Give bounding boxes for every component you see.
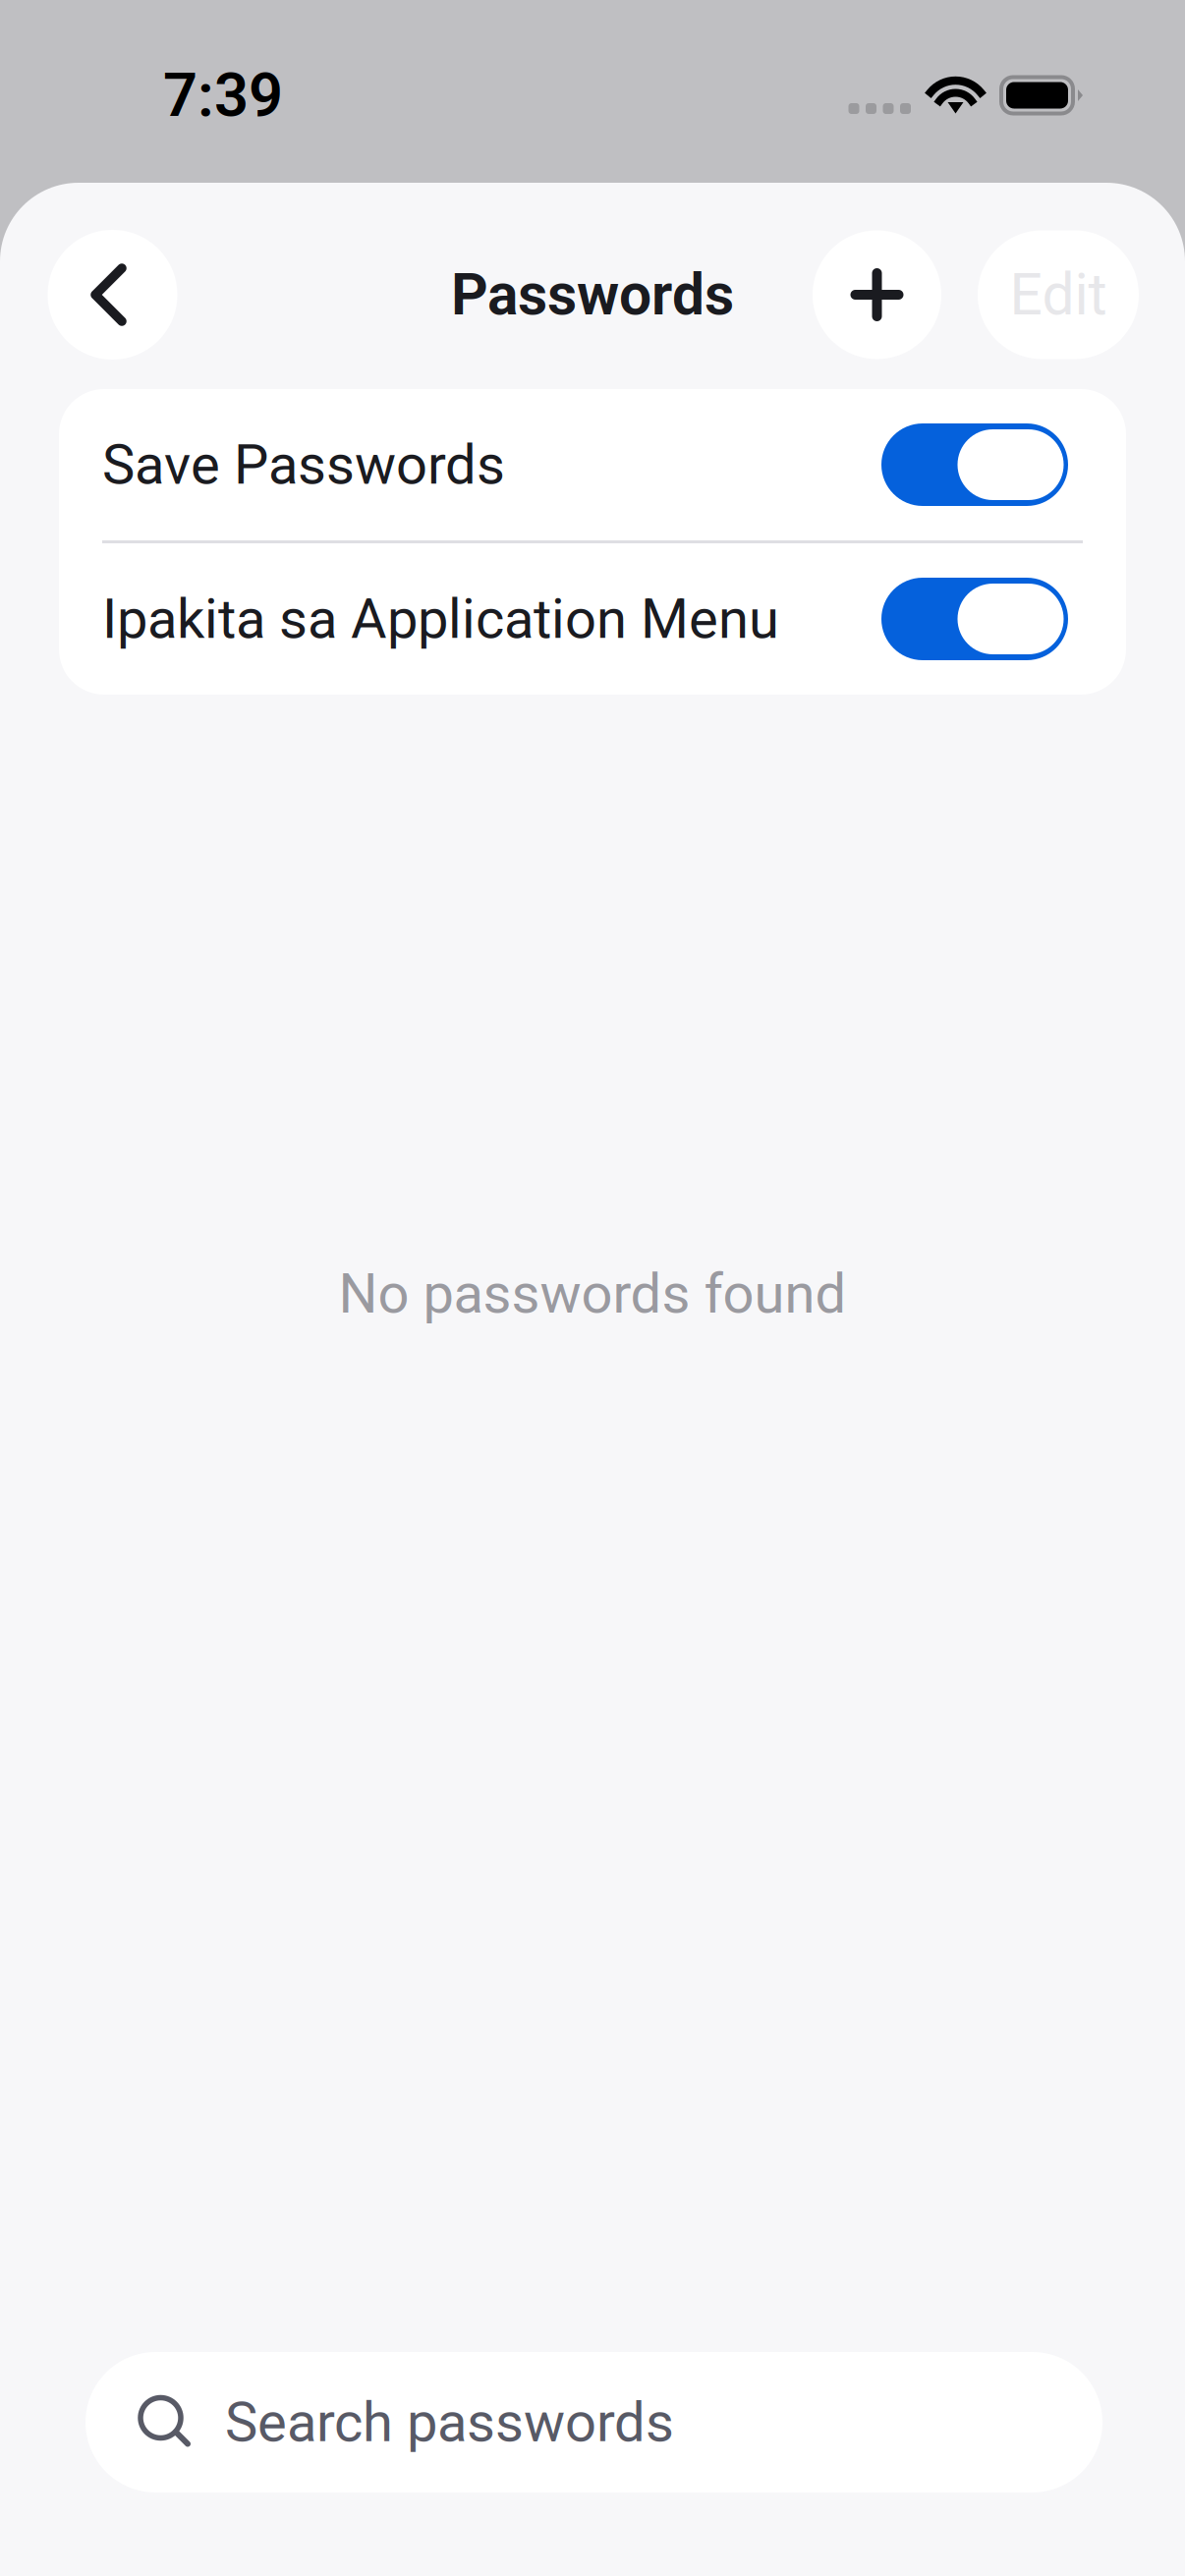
button[interactable]: Search passwords (85, 2352, 1102, 2492)
staticText: Ipakita sa Application Menu (102, 587, 779, 651)
button[interactable]: Add password (813, 230, 941, 359)
staticText: Save Passwords (102, 432, 505, 497)
button[interactable]: Edit (978, 230, 1139, 359)
button[interactable]: Save Passwords (59, 389, 1126, 540)
button[interactable]: Ipakita sa Application Menu (59, 543, 1126, 695)
staticText: Edit (1010, 261, 1107, 329)
staticText: No passwords found (339, 1261, 846, 1326)
staticText: Search passwords (225, 2390, 674, 2454)
staticText: Passwords (451, 261, 734, 329)
button[interactable]: Back (47, 230, 178, 360)
staticText: 7:39 (163, 60, 283, 131)
